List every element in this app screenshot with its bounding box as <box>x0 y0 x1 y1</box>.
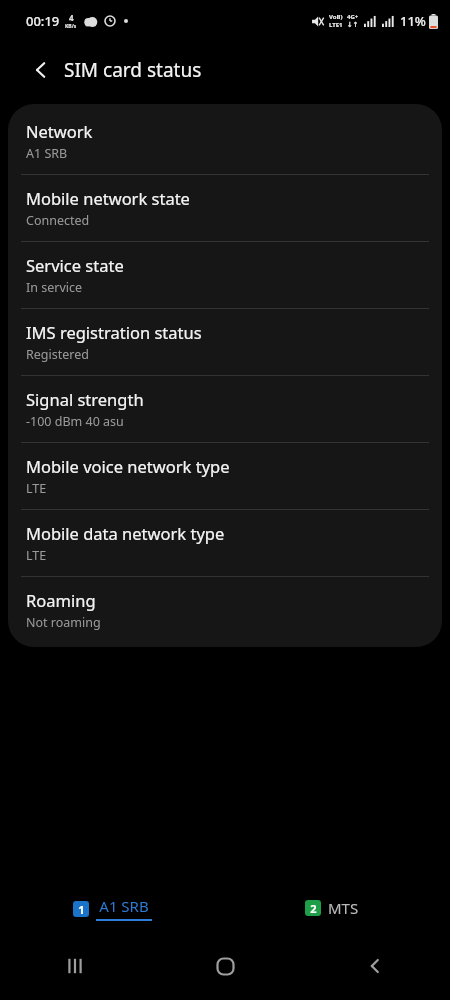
staticText: Service state <box>26 254 124 276</box>
staticText: Not roaming <box>26 614 101 631</box>
staticText: VoⅡ) <box>329 13 343 21</box>
staticText: Mobile data network type <box>26 522 225 544</box>
staticText: A1 SRB <box>99 896 149 916</box>
staticText: LTE <box>26 547 47 564</box>
staticText: SIM card status <box>64 57 202 83</box>
button[interactable]: Back <box>300 946 450 986</box>
button[interactable]: IMS registration status <box>8 309 442 375</box>
staticText: 2 <box>310 901 317 916</box>
staticText: Registered <box>26 346 89 363</box>
staticText: A1 SRB <box>26 145 68 162</box>
staticText: 11% <box>400 12 426 30</box>
staticText: ↓↑ <box>347 21 359 29</box>
button[interactable]: 1 <box>67 892 158 925</box>
button[interactable]: Network <box>8 108 442 174</box>
button[interactable]: Home <box>150 946 300 986</box>
staticText: Mobile network state <box>26 187 190 209</box>
button[interactable]: Signal strength <box>8 376 442 442</box>
staticText: KB/s <box>65 23 77 30</box>
staticText: -100 dBm 40 asu <box>26 413 124 430</box>
button[interactable]: Service state <box>8 242 442 308</box>
button[interactable]: Roaming <box>8 577 442 643</box>
staticText: LTE <box>26 480 47 497</box>
staticText: Network <box>26 120 93 142</box>
staticText: 4 <box>69 12 74 23</box>
staticText: MTS <box>328 898 359 918</box>
staticText: LTE1 <box>329 21 343 29</box>
staticText: In service <box>26 279 83 296</box>
staticText: IMS registration status <box>26 321 202 343</box>
button[interactable]: Back <box>20 49 62 91</box>
staticText: 4G+ <box>347 13 359 21</box>
staticText: Mobile voice network type <box>26 455 230 477</box>
staticText: Connected <box>26 212 90 229</box>
button[interactable]: Mobile data network type <box>8 510 442 576</box>
button[interactable]: Mobile voice network type <box>8 443 442 509</box>
button[interactable]: Recent apps <box>0 946 150 986</box>
staticText: 00:19 <box>26 12 60 30</box>
staticText: 1 <box>78 902 85 917</box>
button[interactable]: 2 <box>299 894 377 922</box>
button[interactable]: Mobile network state <box>8 175 442 241</box>
staticText: Signal strength <box>26 388 144 410</box>
staticText: Roaming <box>26 589 96 611</box>
